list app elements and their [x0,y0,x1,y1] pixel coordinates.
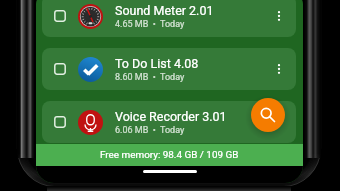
staticText: 4.65 MB • Today [115,19,185,30]
button[interactable]: To Do List 4.08 [42,48,296,90]
staticText: Voice Recorder 3.01 [115,109,227,124]
button[interactable]: Search [251,98,285,132]
staticText: Sound Meter 2.01 [115,3,214,18]
staticText: 6.06 MB • Today [115,125,185,136]
button[interactable]: More options [262,0,296,37]
button[interactable]: More options [262,48,296,90]
button[interactable]: Voice Recorder 3.01 [42,101,296,143]
button[interactable]: More options [262,101,296,143]
staticText: 8.60 MB • Today [115,72,185,83]
button[interactable]: Free memory: 98.4 GB / 109 GB [36,144,303,166]
staticText: To Do List 4.08 [115,56,199,71]
staticText: Free memory: 98.4 GB / 109 GB [100,149,239,161]
button[interactable]: Sound Meter 2.01 [42,0,296,37]
